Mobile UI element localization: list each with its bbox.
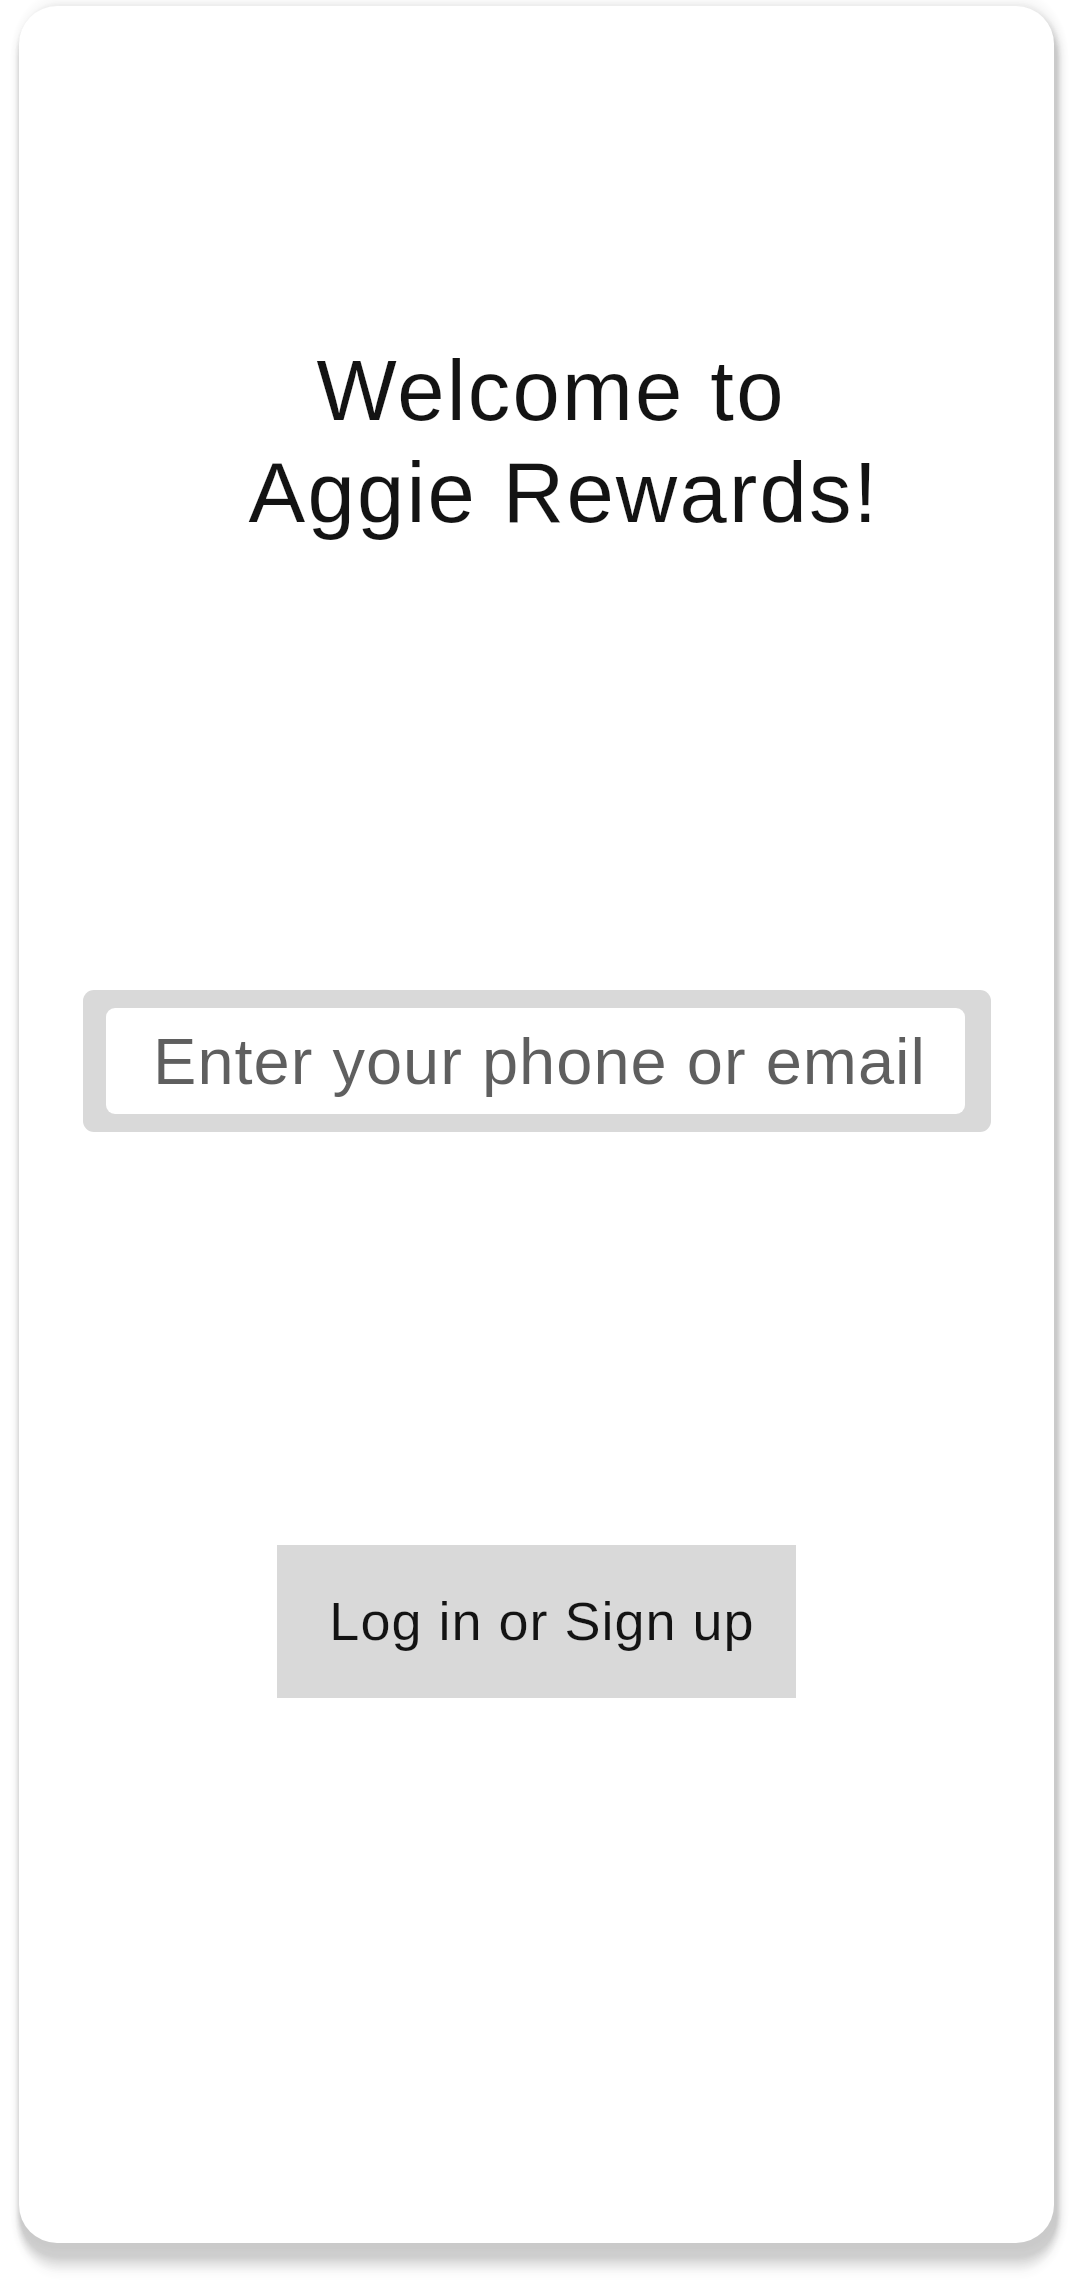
staticText: Aggie Rewards!: [194, 445, 934, 575]
staticText: Enter your phone or email: [153, 1025, 926, 1098]
staticText: Welcome to: [181, 343, 921, 463]
staticText: Log in or Sign up: [329, 1591, 755, 1651]
button[interactable]: Log in or Sign up: [277, 1545, 796, 1698]
button[interactable]: Enter your phone or email: [83, 990, 991, 1132]
